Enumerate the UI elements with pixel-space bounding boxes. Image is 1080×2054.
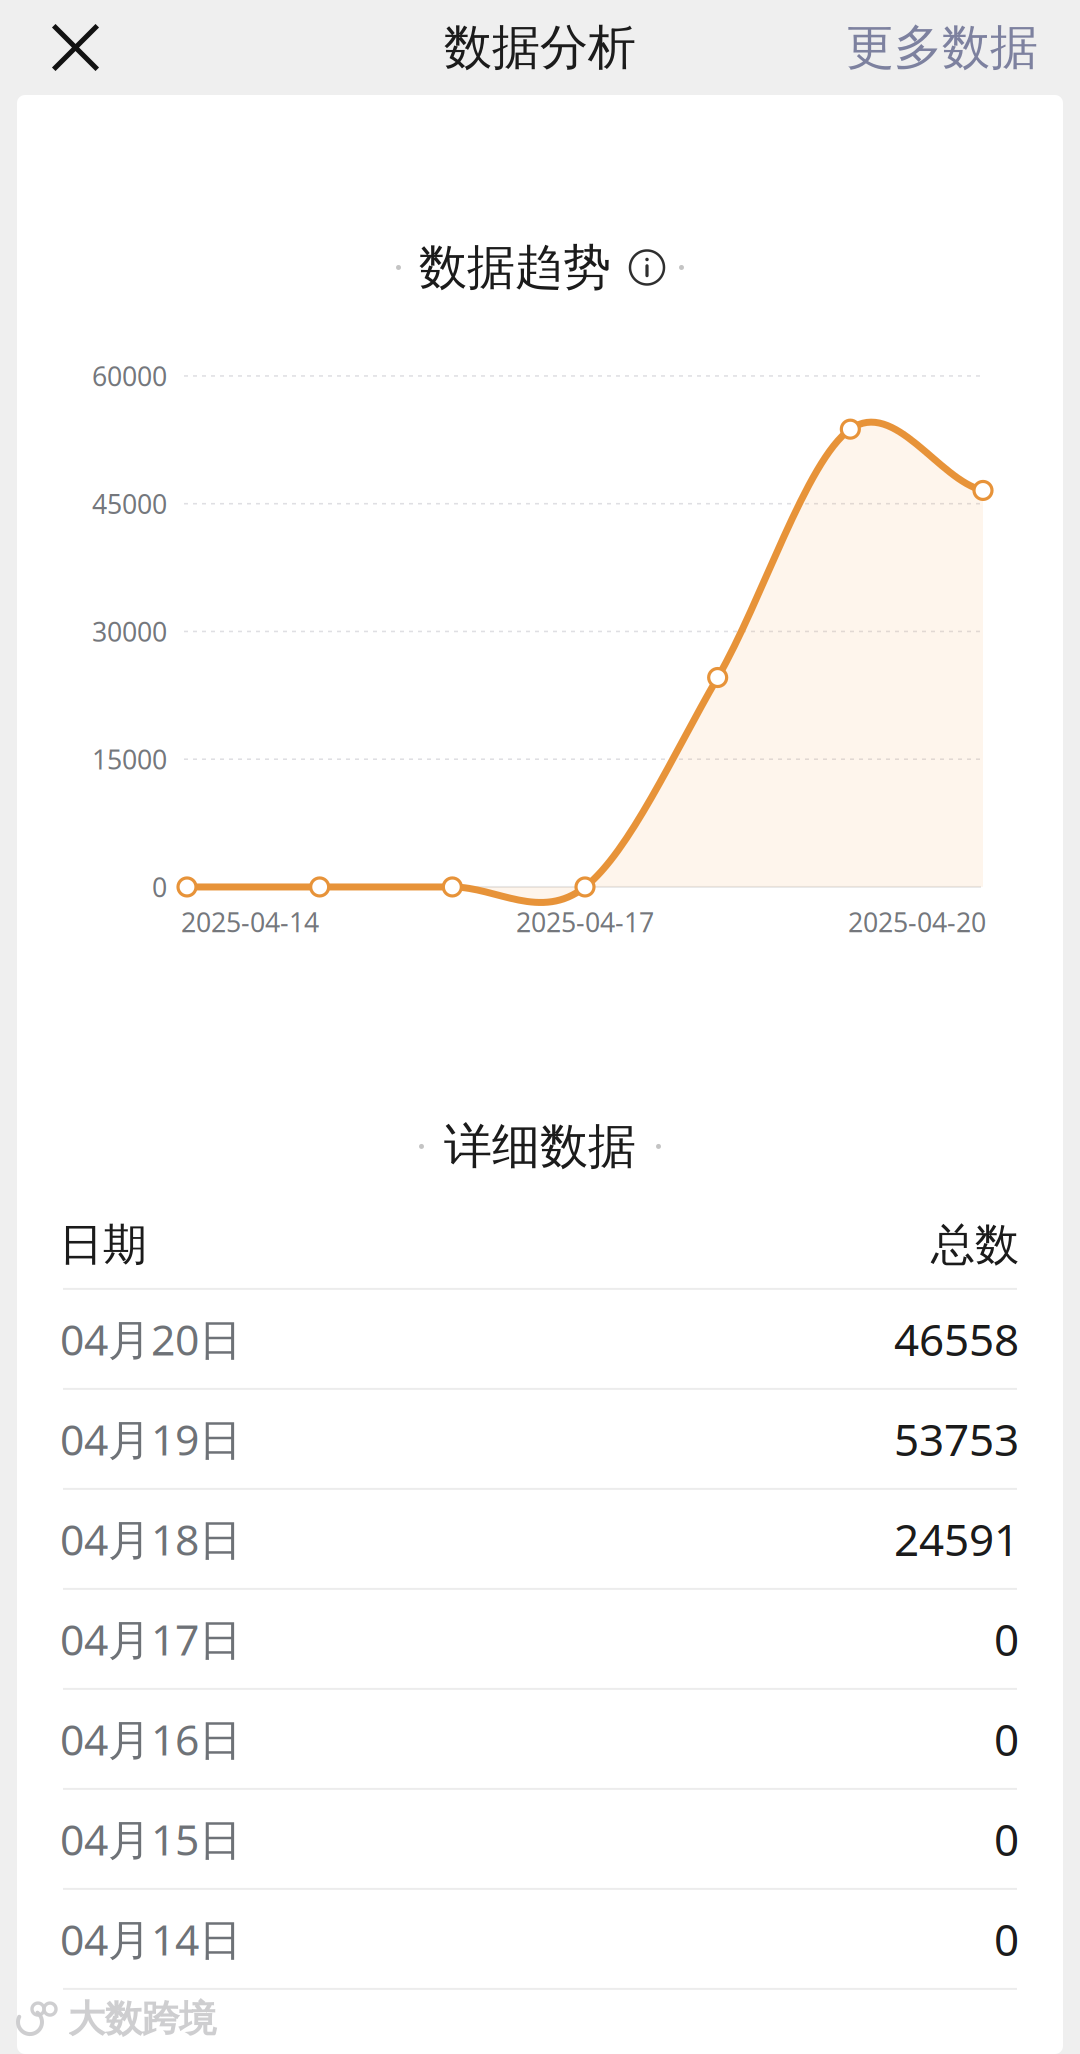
staticText: 04月15日 — [60, 1811, 242, 1867]
staticText: 04月17日 — [60, 1611, 242, 1667]
staticText: 总数 — [931, 1218, 1019, 1272]
staticText: 04月20日 — [60, 1311, 242, 1367]
staticText: 60000 — [92, 358, 167, 394]
staticText: 04月16日 — [60, 1711, 242, 1767]
staticText: 24591 — [894, 1510, 1019, 1568]
staticText: 30000 — [92, 614, 167, 649]
button[interactable]: 04月16日 — [17, 1690, 1063, 1790]
staticText: 数据趋势 — [419, 238, 611, 297]
button[interactable]: 04月15日 — [17, 1790, 1063, 1890]
staticText: 2025-04-17 — [516, 904, 654, 940]
button[interactable]: 04月19日 — [17, 1390, 1063, 1490]
button[interactable]: 04月20日 — [17, 1290, 1063, 1390]
button[interactable]: 更多数据 — [822, 0, 1080, 97]
staticText: 2025-04-20 — [848, 904, 986, 940]
staticText: 53753 — [894, 1410, 1019, 1468]
staticText: 详细数据 — [444, 1117, 636, 1176]
staticText: 45000 — [92, 486, 167, 521]
staticText: 0 — [994, 1710, 1019, 1768]
staticText: 更多数据 — [846, 18, 1038, 77]
staticText: 04月14日 — [60, 1911, 242, 1967]
staticText: 04月18日 — [60, 1511, 242, 1567]
staticText: 0 — [994, 1610, 1019, 1668]
staticText: 0 — [152, 869, 167, 905]
staticText: 0 — [994, 1910, 1019, 1968]
staticText: 15000 — [92, 741, 167, 777]
staticText: 0 — [994, 1810, 1019, 1868]
staticText: 数据分析 — [444, 18, 636, 77]
button[interactable]: 04月17日 — [17, 1590, 1063, 1690]
button[interactable]: 04月18日 — [17, 1490, 1063, 1590]
button[interactable]: Close — [0, 5, 124, 90]
staticText: 04月19日 — [60, 1411, 242, 1467]
staticText: 46558 — [894, 1310, 1019, 1368]
staticText: 2025-04-14 — [181, 904, 319, 940]
staticText: 大数跨境 — [68, 1996, 216, 2042]
staticText: 日期 — [59, 1218, 147, 1272]
button[interactable]: 04月14日 — [17, 1890, 1063, 1990]
